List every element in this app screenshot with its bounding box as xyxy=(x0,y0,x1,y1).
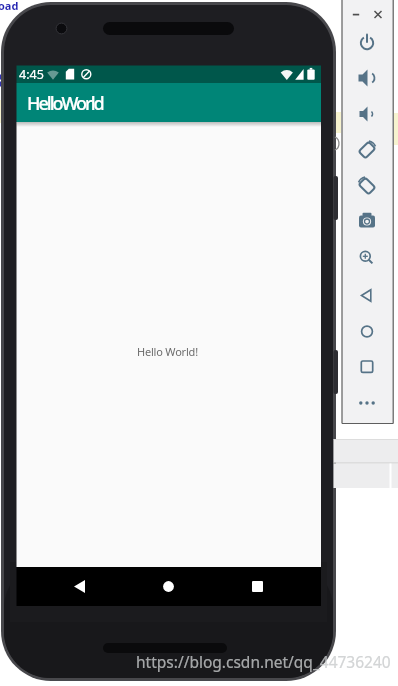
staticText: Hello World! xyxy=(137,344,198,359)
button[interactable] xyxy=(349,170,385,202)
button[interactable] xyxy=(349,350,385,382)
button[interactable] xyxy=(125,567,212,606)
button[interactable] xyxy=(349,280,385,312)
button[interactable] xyxy=(349,27,385,59)
staticText: oad xyxy=(0,0,19,13)
button[interactable] xyxy=(349,242,385,274)
button[interactable]: HelloWorld xyxy=(17,83,322,122)
staticText: 4:45 xyxy=(19,66,44,83)
button[interactable] xyxy=(370,6,386,22)
button[interactable] xyxy=(349,315,385,347)
staticText: https://blog.csdn.net/qq_44736240 xyxy=(136,651,391,672)
button[interactable] xyxy=(349,205,385,237)
button[interactable] xyxy=(349,98,385,130)
button[interactable] xyxy=(348,6,364,22)
staticText: HelloWorld xyxy=(27,91,103,116)
button[interactable] xyxy=(349,388,385,418)
button[interactable] xyxy=(349,62,385,94)
button[interactable] xyxy=(214,567,301,606)
button[interactable] xyxy=(36,567,123,606)
button[interactable] xyxy=(349,134,385,166)
